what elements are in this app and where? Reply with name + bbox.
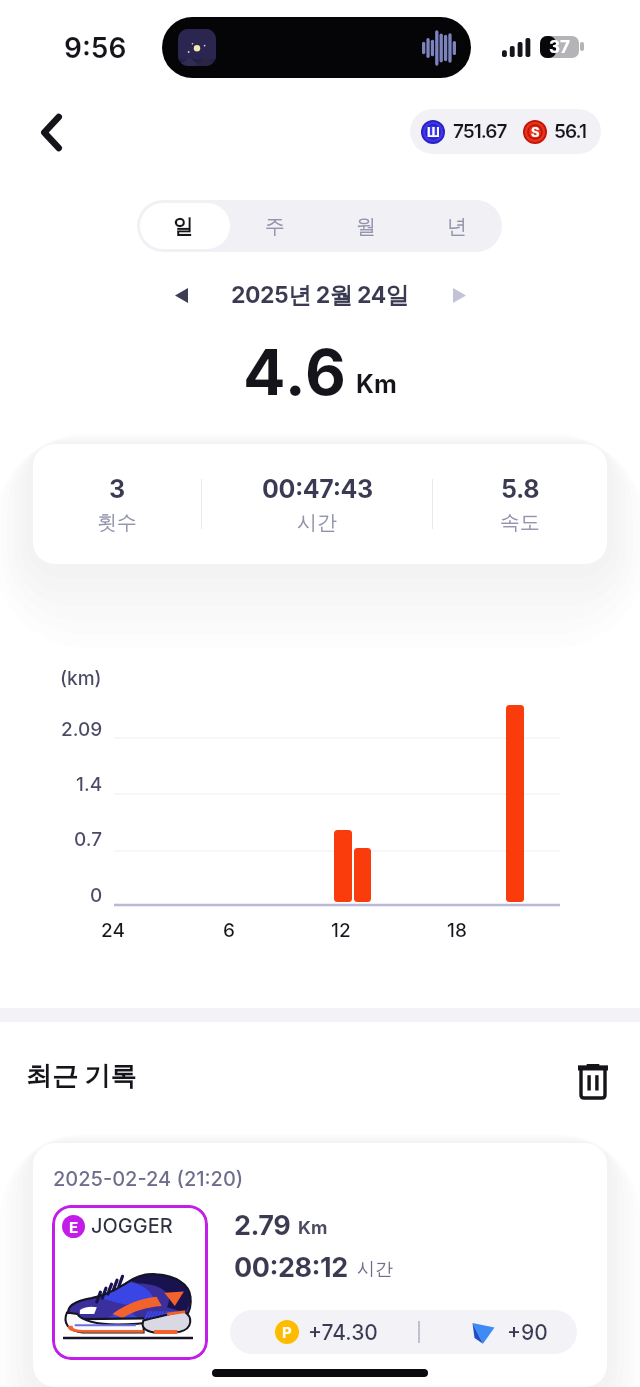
staticText: E — [69, 1218, 79, 1236]
staticText: 2025년 2월 24일 — [231, 281, 409, 310]
button[interactable]: 월 — [320, 200, 411, 252]
staticText: 횟수 — [97, 510, 137, 535]
staticText: 56.1 — [554, 120, 586, 143]
staticText: 37 — [549, 37, 570, 58]
staticText: 0 — [90, 884, 103, 907]
staticText: P — [282, 1323, 292, 1341]
staticText: 24 — [101, 919, 125, 942]
staticText: 5.8 — [501, 474, 540, 504]
staticText: 2.79 — [234, 1209, 291, 1242]
button[interactable]: 2025-02-24 (21:20) — [33, 1143, 607, 1387]
staticText: +90 — [507, 1320, 548, 1345]
staticText: 4.6 — [243, 334, 348, 410]
staticText: 속도 — [500, 510, 540, 535]
staticText: S — [531, 124, 540, 140]
staticText: JOGGER — [91, 1214, 173, 1238]
button[interactable]: Next day — [436, 272, 482, 318]
staticText: Km — [298, 1217, 328, 1239]
staticText: 시간 — [357, 1258, 393, 1281]
button[interactable]: Previous day — [158, 272, 204, 318]
staticText: 18 — [447, 919, 467, 942]
button[interactable]: 일 — [137, 200, 229, 252]
staticText: 751.67 — [453, 120, 507, 143]
staticText: (km) — [60, 667, 102, 690]
staticText: 3 — [109, 474, 125, 504]
staticText: 0.7 — [74, 828, 103, 851]
staticText: 주 — [265, 214, 285, 239]
staticText: +74.30 — [308, 1320, 378, 1345]
staticText: 1.4 — [76, 773, 103, 796]
staticText: 년 — [447, 214, 467, 239]
staticText: 00:47:43 — [262, 474, 373, 504]
staticText: 일 — [173, 214, 193, 239]
button[interactable]: Delete records — [568, 1056, 618, 1106]
staticText: 9:56 — [64, 31, 127, 65]
staticText: 2.09 — [61, 718, 103, 741]
staticText: 2025-02-24 (21:20) — [53, 1167, 244, 1191]
staticText: 6 — [223, 919, 235, 942]
staticText: Km — [356, 369, 397, 399]
staticText: 00:28:12 — [234, 1251, 348, 1284]
staticText: 시간 — [297, 510, 337, 535]
staticText: 월 — [356, 214, 376, 239]
button[interactable]: 년 — [411, 200, 502, 252]
button[interactable]: Back — [26, 107, 76, 157]
button[interactable]: 주 — [229, 200, 320, 252]
staticText: 최근 기록 — [26, 1060, 137, 1093]
staticText: 12 — [331, 919, 351, 942]
staticText: Ш — [427, 124, 440, 140]
button[interactable]: Ш — [410, 109, 601, 154]
